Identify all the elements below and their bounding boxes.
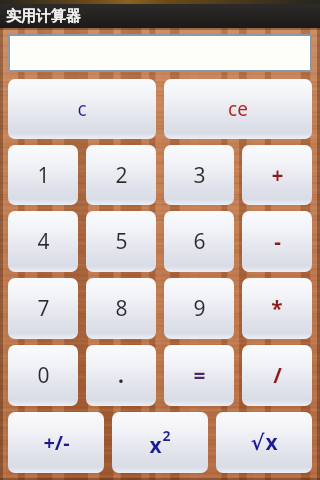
staticText: =	[193, 361, 206, 390]
staticText: 5	[115, 227, 128, 256]
staticText: x	[265, 428, 278, 457]
staticText: 2	[115, 161, 128, 190]
staticText: -	[274, 227, 281, 256]
staticText: 4	[37, 227, 50, 256]
staticText: c	[77, 96, 87, 122]
staticText: 6	[193, 227, 206, 256]
staticText: 2	[162, 426, 171, 445]
button[interactable]: -	[242, 211, 312, 272]
button[interactable]: 1	[8, 145, 78, 205]
button[interactable]: 7	[8, 278, 78, 339]
button[interactable]: +/-	[8, 412, 104, 473]
button[interactable]: +	[242, 145, 312, 205]
staticText: +/-	[43, 429, 70, 456]
button[interactable]: 3	[164, 145, 234, 205]
button[interactable]: 5	[86, 211, 156, 272]
staticText: √	[250, 431, 265, 455]
button[interactable]: 0	[8, 345, 78, 406]
button[interactable]: =	[164, 345, 234, 406]
button[interactable]: 6	[164, 211, 234, 272]
button[interactable]: 8	[86, 278, 156, 339]
staticText: 7	[37, 294, 50, 323]
staticText: 9	[193, 294, 206, 323]
staticText: x	[149, 431, 162, 460]
button[interactable]: *	[242, 278, 312, 339]
button[interactable]: Square root	[216, 412, 312, 473]
staticText: 3	[193, 161, 206, 190]
staticText: 实用计算器	[6, 7, 81, 26]
button[interactable]: .	[86, 345, 156, 406]
button[interactable]: /	[242, 345, 312, 406]
button[interactable]: x	[112, 412, 208, 473]
staticText: 0	[37, 361, 50, 390]
button[interactable]: 9	[164, 278, 234, 339]
staticText: .	[118, 361, 124, 390]
button[interactable]: c	[8, 79, 156, 139]
button[interactable]: 2	[86, 145, 156, 205]
staticText: ce	[228, 96, 248, 122]
staticText: /	[273, 361, 282, 390]
staticText: 8	[115, 294, 128, 323]
button[interactable]: ce	[164, 79, 312, 139]
staticText: 1	[37, 161, 50, 190]
button[interactable]: 4	[8, 211, 78, 272]
staticText: *	[271, 294, 283, 323]
staticText: +	[271, 161, 284, 190]
